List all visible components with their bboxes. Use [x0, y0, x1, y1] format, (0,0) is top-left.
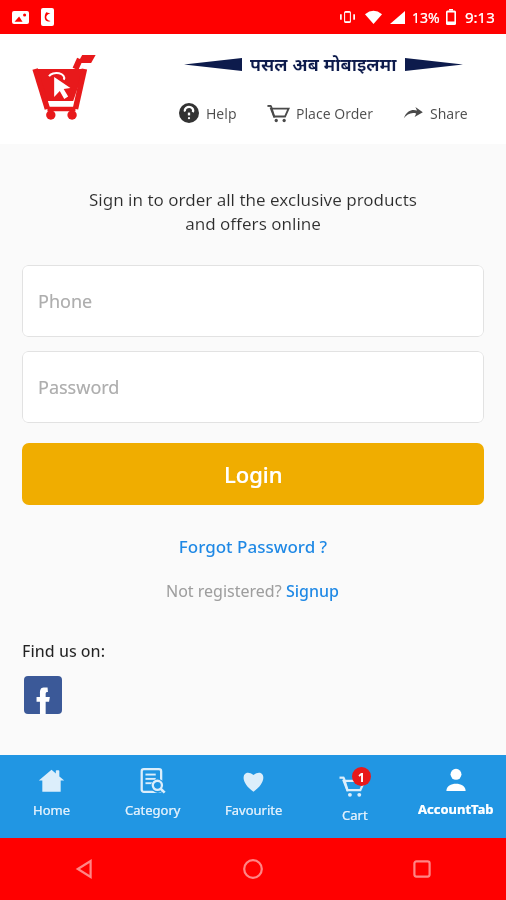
button[interactable]: Home [168, 838, 337, 900]
staticText: Not registered? [166, 580, 286, 602]
staticText: Place Order [296, 104, 373, 123]
button[interactable]: AccountTab [405, 755, 506, 838]
button[interactable]: Back [0, 838, 168, 900]
staticText: Help [206, 104, 237, 123]
staticText: 1 [358, 769, 365, 785]
staticText: Share [430, 104, 468, 123]
staticText: Password [38, 375, 120, 400]
staticText: Login [224, 459, 283, 489]
button[interactable]: Favourite [203, 755, 304, 838]
staticText: Favourite [225, 801, 283, 819]
button[interactable]: Help [177, 100, 239, 126]
button[interactable]: Home [0, 755, 102, 838]
staticText: Home [33, 801, 70, 819]
button[interactable]: Place Order [265, 99, 375, 127]
staticText: Phone [38, 289, 93, 314]
button[interactable]: Login [22, 443, 484, 505]
staticText: Cart [342, 806, 368, 824]
button[interactable]: eRetailMart logo [6, 39, 118, 139]
button[interactable]: Password [22, 351, 484, 423]
staticText: पसल अब मोबाइलमा [250, 52, 397, 77]
staticText: 9:13 [465, 7, 495, 27]
staticText: 13% [412, 8, 440, 27]
button[interactable]: Share [401, 100, 470, 126]
button[interactable]: Phone [22, 265, 484, 337]
button[interactable]: Signup [286, 580, 340, 602]
staticText: Find us on: [22, 640, 106, 662]
button[interactable]: Category [102, 755, 203, 838]
button[interactable]: 1 [304, 755, 405, 838]
button[interactable]: Forgot Password ? [0, 531, 506, 562]
button[interactable]: Recent apps [337, 838, 506, 900]
staticText: AccountTab [418, 800, 494, 818]
staticText: Sign in to order all the exclusive produ… [24, 188, 482, 235]
button[interactable]: Facebook [24, 676, 62, 714]
staticText: Category [125, 801, 181, 819]
